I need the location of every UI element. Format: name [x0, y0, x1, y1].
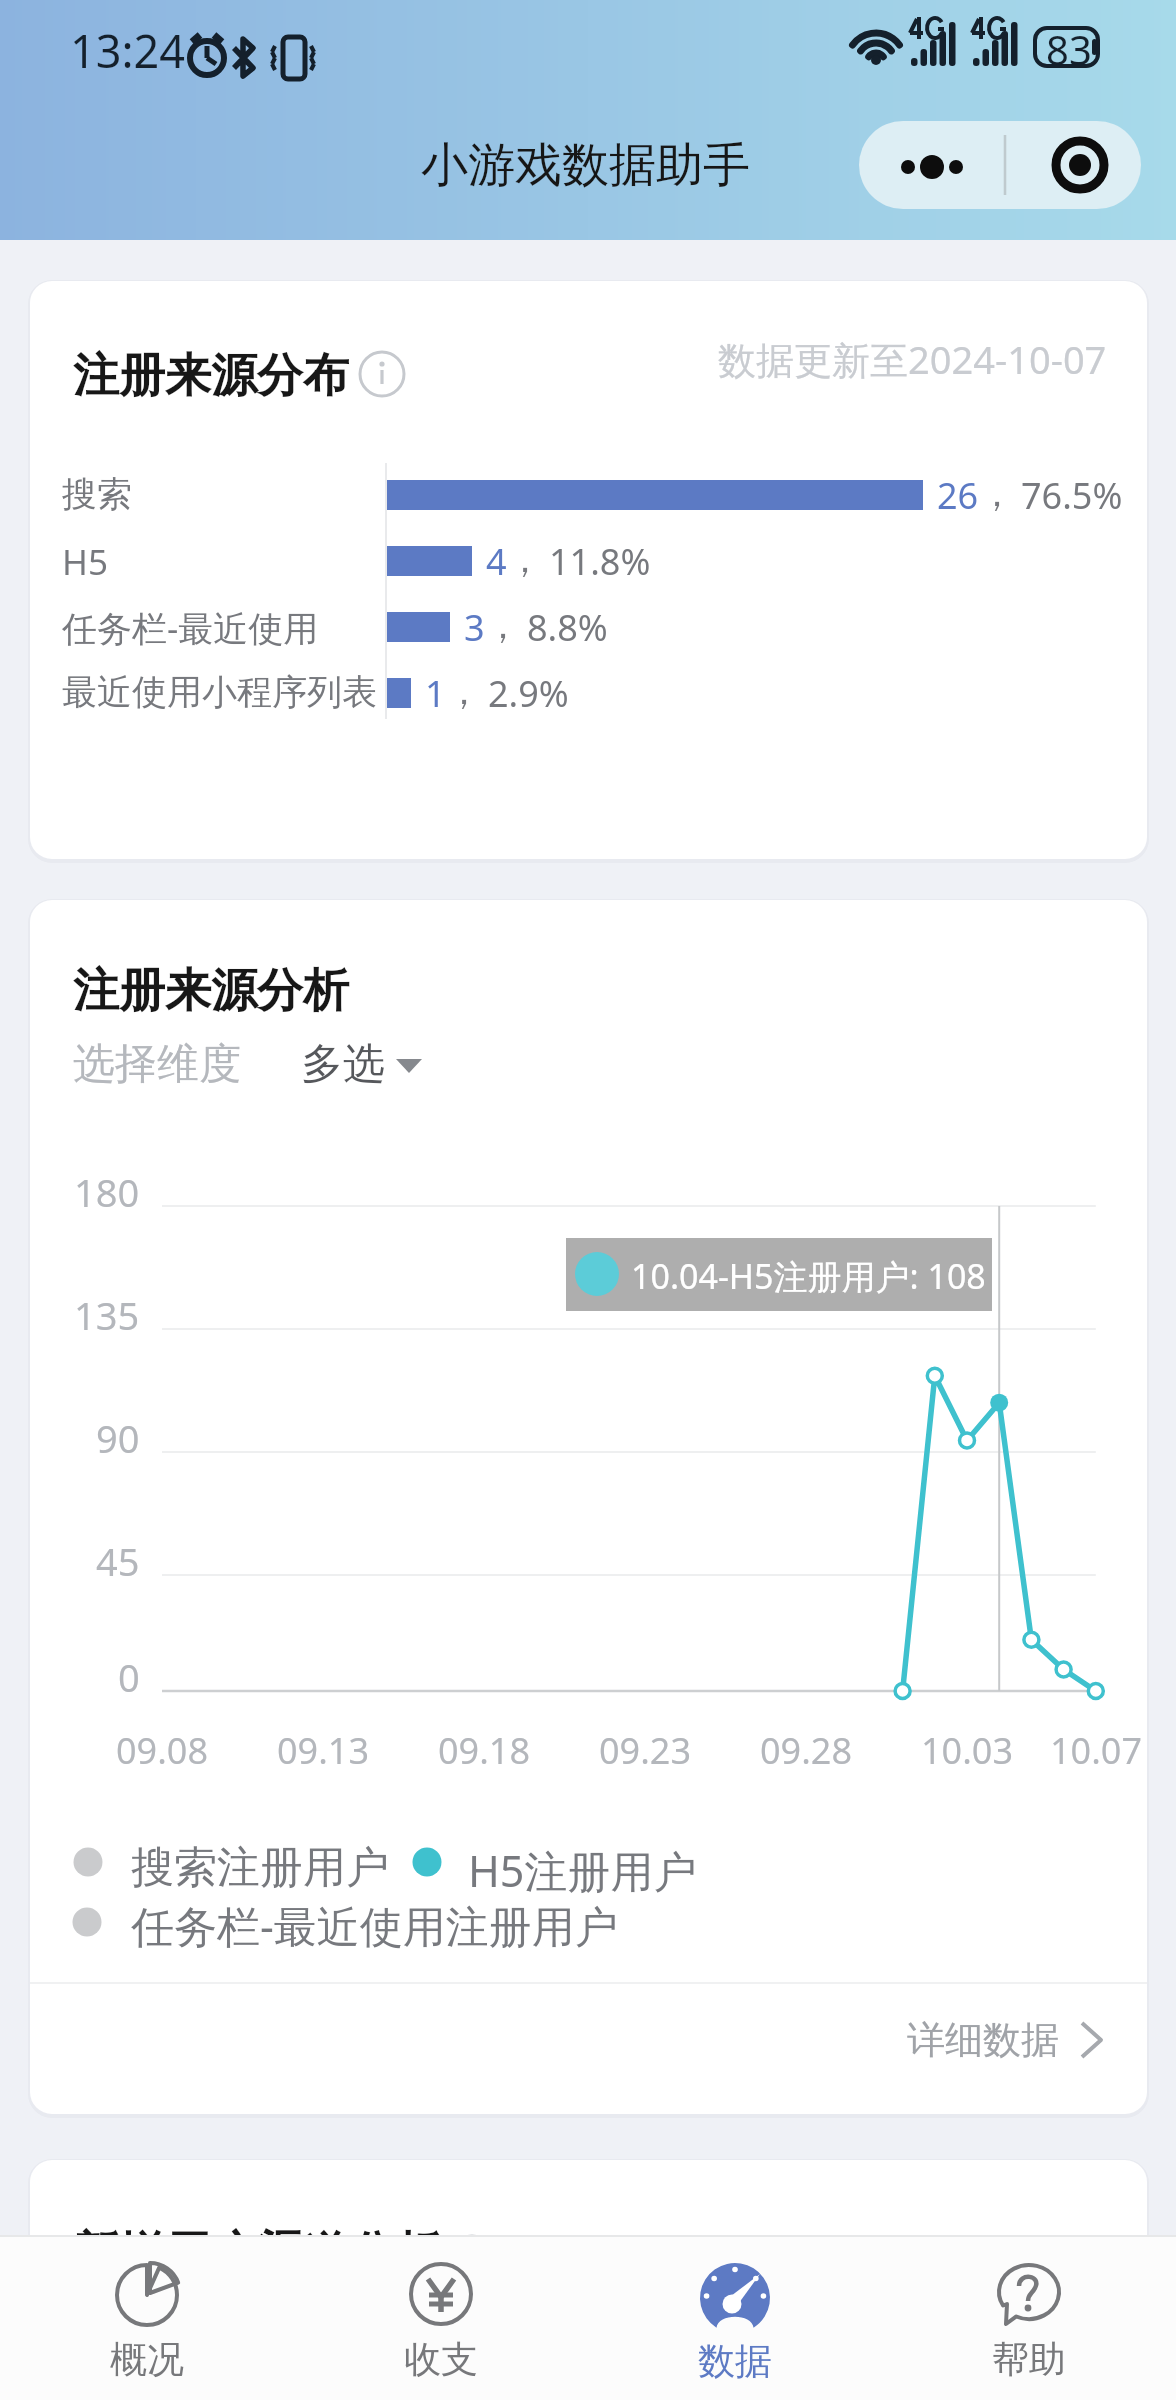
- staticText: ，: [979, 471, 1015, 516]
- staticText: 数据: [698, 2338, 772, 2385]
- staticText: 83: [1046, 22, 1092, 76]
- button[interactable]: 数据: [588, 2235, 882, 2400]
- staticText: 11.8%: [549, 537, 651, 586]
- staticText: 注册来源分析: [73, 962, 349, 1020]
- staticText: 2.9%: [488, 669, 569, 718]
- staticText: ，: [446, 669, 482, 714]
- staticText: 4: [486, 537, 507, 586]
- staticText: 135: [74, 1289, 140, 1341]
- staticText: 09.18: [438, 1726, 531, 1775]
- staticText: 帮助: [992, 2336, 1066, 2383]
- staticText: H5注册用户: [468, 1841, 697, 1900]
- staticText: 小游戏数据助手: [421, 136, 750, 195]
- staticText: 搜索注册用户: [131, 1841, 389, 1895]
- staticText: 76.5%: [1021, 471, 1123, 520]
- staticText: 0: [118, 1651, 140, 1703]
- staticText: 1: [425, 669, 446, 718]
- staticText: 10.03: [921, 1726, 1014, 1775]
- button[interactable]: 收支: [294, 2235, 588, 2400]
- staticText: 收支: [404, 2336, 478, 2383]
- button[interactable]: 概况: [0, 2235, 294, 2400]
- staticText: 09.23: [599, 1726, 692, 1775]
- staticText: 10.07: [1050, 1726, 1143, 1775]
- staticText: ，: [485, 603, 521, 648]
- button[interactable]: 说明: [359, 351, 405, 397]
- staticText: 搜索: [62, 472, 132, 516]
- staticText: 任务栏-最近使用注册用户: [131, 1896, 618, 1955]
- staticText: 3: [464, 603, 485, 652]
- staticText: 概况: [110, 2336, 184, 2383]
- staticText: 10.04-H5注册用户: 108: [631, 1253, 986, 1299]
- staticText: 任务栏-最近使用: [62, 604, 319, 652]
- button[interactable]: 帮助: [882, 2235, 1176, 2400]
- staticText: 180: [74, 1166, 140, 1218]
- staticText: 09.28: [760, 1726, 853, 1775]
- staticText: 90: [96, 1412, 140, 1464]
- button[interactable]: 更多和关闭: [859, 121, 1141, 209]
- staticText: 13:24: [70, 20, 186, 81]
- staticText: 09.08: [116, 1726, 209, 1775]
- staticText: 最近使用小程序列表: [62, 670, 377, 714]
- staticText: 详细数据: [907, 2016, 1059, 2064]
- staticText: 数据更新至2024-10-07: [718, 333, 1107, 385]
- staticText: 多选: [301, 1038, 385, 1091]
- staticText: 26: [937, 471, 979, 520]
- staticText: 新增用户渠道分析: [73, 2225, 441, 2283]
- staticText: 09.13: [277, 1726, 370, 1775]
- staticText: ，: [507, 537, 543, 582]
- staticText: 8.8%: [527, 603, 608, 652]
- button[interactable]: 说明: [449, 2235, 495, 2281]
- staticText: 选择维度: [73, 1038, 241, 1091]
- staticText: H5: [62, 538, 108, 586]
- staticText: 注册来源分布: [73, 347, 349, 405]
- button[interactable]: 选择维度: [73, 1038, 425, 1091]
- button[interactable]: 详细数据: [30, 1976, 1147, 2104]
- staticText: 45: [96, 1535, 140, 1587]
